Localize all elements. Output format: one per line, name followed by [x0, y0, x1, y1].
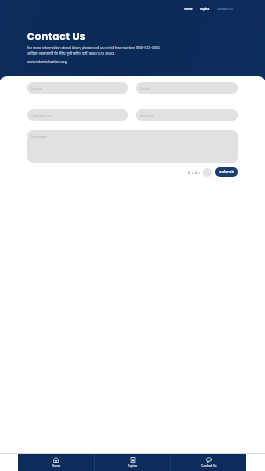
button[interactable]: Subject [136, 109, 238, 121]
button[interactable]: Contact no. [27, 109, 128, 121]
button[interactable]: Contact Us [171, 454, 246, 471]
staticText: Contact no. [31, 113, 52, 118]
staticText: Contact Us [217, 7, 233, 11]
staticText: www.islamicfashion.org [27, 59, 68, 64]
other: Contact Us [206, 457, 212, 463]
staticText: Home [184, 7, 193, 11]
staticText: 6 + 4 = [188, 170, 201, 175]
staticText: Contact Us [201, 464, 217, 468]
button[interactable]: Name [27, 82, 128, 94]
button[interactable]: Home [18, 454, 94, 471]
button[interactable]: Contact Us [215, 5, 235, 13]
staticText: Submit [219, 169, 235, 175]
staticText: Subject [140, 113, 154, 118]
staticText: Contact Us [27, 29, 86, 43]
button[interactable]: Topics [198, 5, 212, 13]
other: Topics [130, 457, 136, 463]
staticText: Message [31, 134, 48, 139]
staticText: Email [140, 86, 150, 91]
other: Home [53, 457, 59, 463]
button[interactable]: Submit [215, 167, 238, 177]
button[interactable]: Captcha answer [203, 168, 212, 177]
staticText: Name [31, 86, 42, 91]
staticText: Home [52, 464, 61, 468]
button[interactable]: Email [136, 82, 238, 94]
staticText: अधिक जानकारी के लिए हमें कॉल करें 1800 5… [27, 51, 115, 56]
staticText: For more information about Islam, please… [27, 46, 161, 50]
staticText: Topics [128, 464, 138, 468]
button[interactable]: Topics [95, 454, 170, 471]
staticText: Topics [200, 7, 210, 11]
button[interactable]: Home [182, 5, 195, 13]
